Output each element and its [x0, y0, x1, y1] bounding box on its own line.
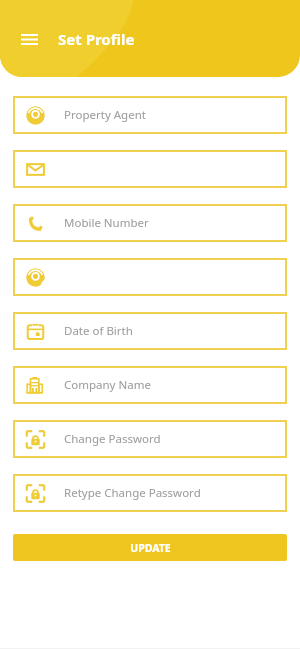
- button[interactable]: [13, 150, 287, 188]
- staticText: Mobile Number: [64, 215, 149, 231]
- button[interactable]: Retype Change Password: [13, 474, 287, 512]
- button[interactable]: Change Password: [13, 420, 287, 458]
- button[interactable]: UPDATE: [13, 534, 287, 561]
- staticText: Property Agent: [64, 107, 146, 123]
- button[interactable]: Open navigation menu: [14, 24, 44, 54]
- staticText: Company Name: [64, 377, 151, 393]
- button[interactable]: Property Agent: [13, 96, 287, 134]
- button[interactable]: Company Name: [13, 366, 287, 404]
- staticText: Retype Change Password: [64, 485, 201, 501]
- staticText: Set Profile: [58, 29, 135, 49]
- button[interactable]: Mobile Number: [13, 204, 287, 242]
- staticText: Date of Birth: [64, 323, 133, 339]
- staticText: UPDATE: [130, 541, 171, 555]
- button[interactable]: Date of Birth: [13, 312, 287, 350]
- staticText: Change Password: [64, 431, 161, 447]
- button[interactable]: [13, 258, 287, 296]
